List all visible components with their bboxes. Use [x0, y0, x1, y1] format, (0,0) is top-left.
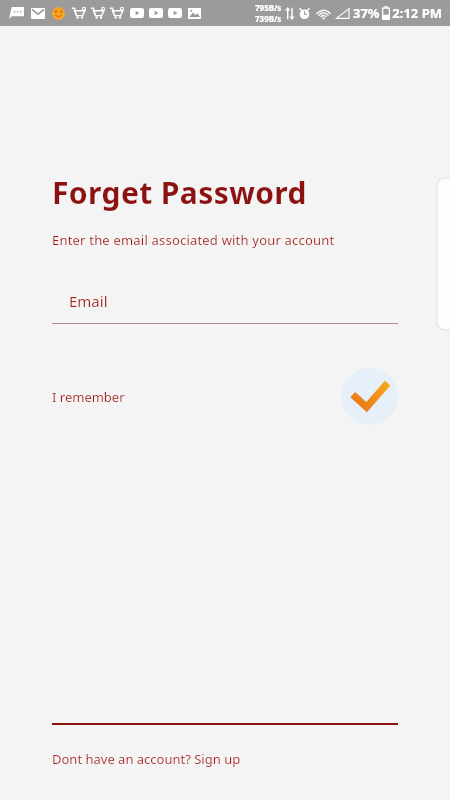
staticText: Email	[69, 291, 108, 311]
staticText: Enter the email associated with your acc…	[52, 231, 335, 249]
button[interactable]: I remember	[52, 384, 125, 410]
staticText: 2:12 PM	[392, 4, 442, 22]
button[interactable]: Submit	[341, 368, 398, 425]
button[interactable]: Email	[52, 291, 398, 324]
staticText: 37%	[353, 4, 380, 22]
staticText: 739B/s	[255, 13, 282, 24]
staticText: Forget Password	[52, 172, 307, 213]
staticText: 795B/s	[255, 2, 282, 13]
button[interactable]: Dont have an account? Sign up	[52, 750, 241, 768]
